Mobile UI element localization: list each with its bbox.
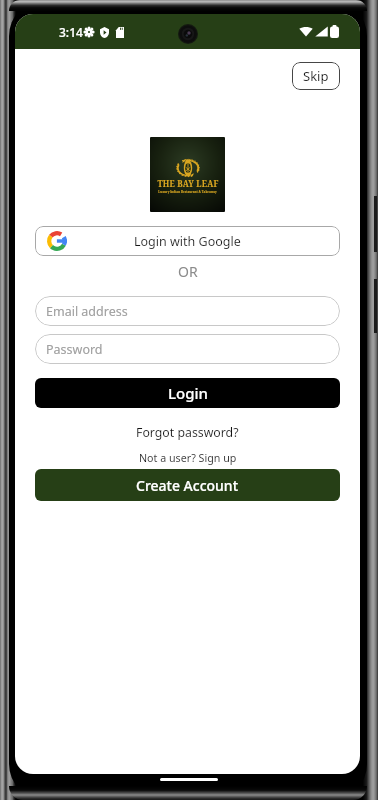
staticText: Password [46, 341, 103, 358]
staticText: Login with Google [134, 233, 241, 250]
button[interactable]: Create Account [35, 469, 340, 501]
staticText: Skip [303, 67, 329, 85]
button[interactable]: Email address [35, 296, 340, 326]
staticText: Create Account [136, 476, 239, 495]
button[interactable]: Forgot password? [132, 423, 243, 442]
button[interactable]: Password [35, 334, 340, 364]
button[interactable]: Not a user? Sign up [135, 450, 241, 467]
staticText: Luxury Indian Restaurant & Takeaway [158, 190, 217, 194]
staticText: Not a user? Sign up [139, 451, 237, 466]
staticText: OR [178, 262, 198, 281]
staticText: Login [168, 383, 208, 403]
button[interactable]: Skip [292, 62, 340, 90]
button[interactable]: Login [35, 378, 340, 408]
staticText: Email address [46, 303, 128, 320]
staticText: 3:14 [59, 24, 83, 40]
button[interactable]: Login with Google [35, 226, 340, 256]
staticText: THE BAY LEAF [157, 178, 219, 189]
staticText: Forgot password? [136, 424, 239, 441]
